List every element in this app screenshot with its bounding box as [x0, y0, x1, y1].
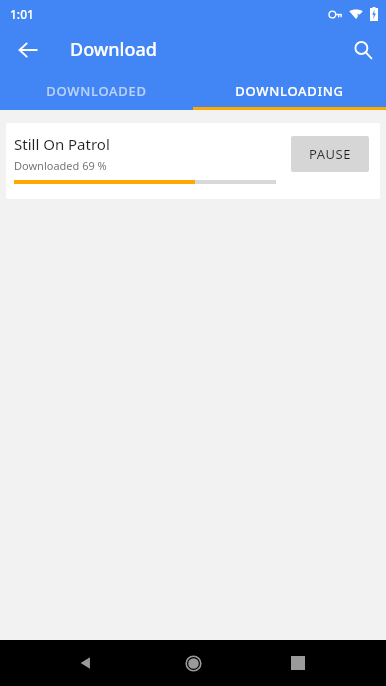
button[interactable]: Search — [343, 30, 383, 70]
staticText: DOWNLOADED — [46, 82, 147, 100]
button[interactable]: Recent apps — [278, 643, 318, 683]
button[interactable]: Back — [8, 30, 48, 70]
staticText: Download — [70, 37, 157, 62]
staticText: DOWNLOADING — [235, 82, 344, 100]
staticText: 1:01 — [10, 6, 34, 22]
button[interactable]: DOWNLOADED — [0, 74, 193, 108]
staticText: Still On Patrol — [14, 134, 110, 154]
button[interactable]: PAUSE — [291, 136, 369, 172]
staticText: Downloaded 69 % — [14, 158, 107, 173]
button[interactable]: Home — [173, 643, 213, 683]
staticText: PAUSE — [309, 145, 351, 163]
button[interactable]: DOWNLOADING — [193, 74, 386, 108]
button[interactable]: Still On Patrol — [6, 123, 380, 199]
button[interactable]: Back — [66, 643, 106, 683]
